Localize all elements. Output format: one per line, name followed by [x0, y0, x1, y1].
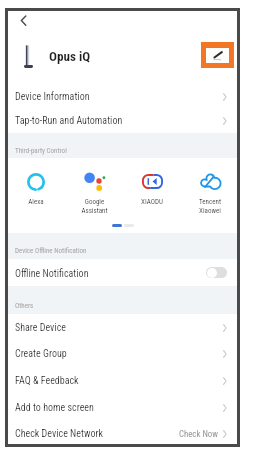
staticText: Third-party Control — [15, 147, 67, 155]
staticText: XIAODU — [141, 198, 163, 206]
button[interactable]: XIAODU — [127, 159, 177, 186]
staticText: Check Device Network — [15, 428, 104, 440]
button[interactable]: Google Assistant — [69, 159, 119, 195]
staticText: Device Information — [15, 91, 90, 103]
button[interactable]: Share Device — [8, 314, 237, 341]
staticText: Others — [15, 302, 34, 310]
staticText: Device Offline Notification — [15, 247, 87, 255]
staticText: Offline Notification — [15, 268, 89, 280]
button[interactable]: Offline Notification — [8, 259, 237, 286]
staticText: Share Device — [15, 322, 66, 334]
staticText: Tap-to-Run and Automation — [15, 115, 123, 127]
button[interactable]: Device Information — [8, 85, 237, 108]
button[interactable]: FAQ & Feedback — [8, 367, 237, 394]
staticText: Opus iQ — [49, 49, 91, 64]
button[interactable]: Back — [15, 11, 34, 30]
button[interactable]: Create Group — [8, 340, 237, 367]
staticText: Tencent Xiaowei — [199, 198, 221, 215]
button[interactable]: Check Device Network — [8, 420, 237, 444]
button[interactable]: Rename device — [201, 42, 234, 68]
button[interactable]: Alexa — [11, 159, 61, 186]
staticText: FAQ & Feedback — [15, 375, 79, 387]
staticText: Create Group — [15, 348, 67, 360]
staticText: Alexa — [28, 198, 44, 206]
button[interactable]: Add to home screen — [8, 394, 237, 421]
button[interactable]: Tap-to-Run and Automation — [8, 108, 237, 134]
staticText: Check Now — [179, 429, 218, 439]
staticText: Add to home screen — [15, 402, 94, 414]
staticText: Google Assistant — [81, 198, 108, 215]
button[interactable]: Tencent Xiaowei — [185, 159, 235, 195]
